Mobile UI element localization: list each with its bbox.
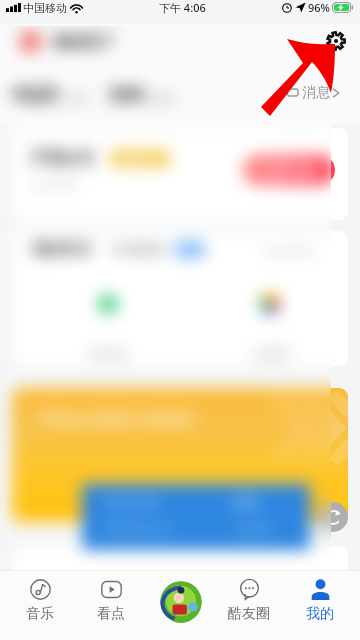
staticText: 1025 [10,80,59,109]
button[interactable]: Avatar [19,30,42,53]
button[interactable]: 消息 [286,84,342,102]
button[interactable]: 小程序 [224,291,316,361]
staticText: 开通会员领取专属福利 [36,410,196,430]
button[interactable]: 音乐包 [62,291,154,361]
staticText: 领取 [232,494,260,512]
button[interactable]: 立即开通 [243,155,335,185]
button[interactable] [12,546,348,592]
staticText: 酷我用户 [54,33,114,52]
staticText: 我的 [306,605,334,623]
staticText: NEW [181,244,199,255]
staticText: 去签到 [232,520,274,538]
button[interactable]: 小程序 [224,291,316,361]
staticText: 立即开通 [263,162,315,178]
staticText: 小程序 [251,345,290,361]
staticText: 我的音乐 [32,240,92,259]
staticText: 粉丝 [150,90,176,106]
button[interactable]: Avatar [19,30,42,53]
button[interactable]: Home [160,581,202,623]
button[interactable]: 每日任务 [82,484,310,550]
button[interactable]: Refresh [318,502,348,532]
staticText: 消息 [302,84,330,102]
staticText: 小程序 [251,345,290,361]
staticText: 粉丝 [150,90,176,106]
button[interactable]: Settings [325,30,347,52]
button[interactable] [12,546,348,592]
button[interactable]: Refresh [318,502,348,532]
staticText: 豪华VIP [121,151,160,166]
staticText: 96% [308,0,330,15]
staticText: 豪华VIP [121,151,160,166]
button[interactable]: 309 [108,80,176,109]
staticText: 开通会员 [30,148,94,168]
button[interactable]: 每日任务 [82,484,310,550]
staticText: 1025 [10,80,59,109]
staticText: 看点 [97,605,125,623]
staticText: 开通会员 [30,148,94,168]
staticText: 本地歌曲 [110,241,166,259]
button[interactable]: 酷友圈 [226,570,272,640]
staticText: 酷我用户 [54,33,114,52]
staticText: 领取 [232,494,260,512]
staticText: 309 [108,80,145,109]
staticText: 每日任务 [104,494,160,512]
staticText: 我的音乐 [32,240,92,259]
staticText: 每日任务 [104,494,160,512]
staticText: 309 [108,80,145,109]
staticText: 去签到 [232,520,274,538]
button[interactable]: 1025 [10,80,90,109]
staticText: 关注 [64,90,90,106]
button[interactable]: 开通会员领取专属福利 [12,388,348,522]
staticText: 音乐 [26,605,54,623]
button[interactable]: 开通会员 [12,128,348,220]
button[interactable]: 1025 [10,80,90,109]
staticText: 中国移动 [23,1,67,15]
button[interactable]: 音乐 [17,570,63,640]
button[interactable]: 开通会员领取专属福利 [12,388,348,522]
button[interactable]: 看点 [88,570,134,640]
staticText: 开通会员领取专属福利 [36,410,196,430]
staticText: 关注 [64,90,90,106]
button[interactable]: 我的 [297,570,343,640]
button[interactable]: 音乐包 [62,291,154,361]
button[interactable]: 立即开通 [243,155,335,185]
button[interactable]: 开通会员 [12,128,348,220]
staticText: NEW [181,244,199,255]
staticText: 立即开通 [263,162,315,178]
button[interactable]: 309 [108,80,176,109]
staticText: 下午 4:06 [159,0,206,15]
staticText: 本地歌曲 [110,241,166,259]
staticText: 酷友圈 [228,605,270,623]
